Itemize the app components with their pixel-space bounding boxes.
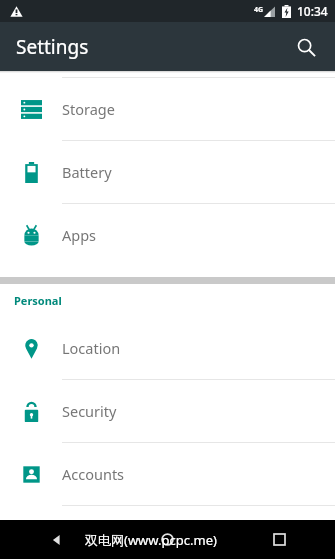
staticText: 10:34 <box>297 3 328 19</box>
staticText: Storage <box>62 99 115 119</box>
button[interactable]: Search <box>286 27 326 67</box>
button[interactable]: Accounts <box>0 443 335 506</box>
staticText: 双电网(www.pcpc.me) <box>85 531 217 549</box>
button[interactable]: Battery <box>0 141 335 204</box>
button[interactable]: Recents <box>223 520 335 559</box>
button[interactable]: Back <box>0 520 111 559</box>
staticText: Personal <box>14 293 62 308</box>
staticText: Accounts <box>62 464 125 484</box>
staticText: Battery <box>62 162 112 182</box>
staticText: Location <box>62 338 121 358</box>
staticText: 4G <box>254 5 264 15</box>
button[interactable]: Storage <box>0 78 335 141</box>
staticText: Settings <box>16 34 89 60</box>
button[interactable]: Apps <box>0 204 335 266</box>
button[interactable]: Security <box>0 380 335 443</box>
staticText: Security <box>62 401 117 421</box>
button[interactable]: Home <box>111 520 223 559</box>
staticText: Apps <box>62 225 97 245</box>
button[interactable]: Location <box>0 317 335 380</box>
